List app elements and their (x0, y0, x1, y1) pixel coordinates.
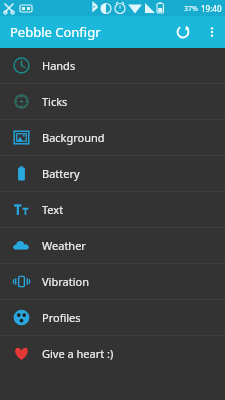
staticText: Hands (42, 58, 76, 73)
button[interactable]: Profiles (0, 300, 225, 335)
staticText: Text (42, 202, 64, 217)
button[interactable]: Weather (0, 228, 225, 263)
button[interactable]: Give a heart :) (0, 336, 225, 371)
button[interactable]: More options (199, 19, 225, 45)
button[interactable]: Ticks (0, 84, 225, 119)
staticText: Background (42, 130, 105, 145)
button[interactable]: Text (0, 192, 225, 227)
staticText: 37% (184, 4, 198, 14)
staticText: Weather (42, 238, 86, 253)
staticText: Ticks (42, 94, 68, 109)
button[interactable]: Vibration (0, 264, 225, 299)
staticText: Vibration (42, 274, 89, 289)
staticText: Give a heart :) (42, 346, 114, 361)
button[interactable]: Background (0, 120, 225, 155)
button[interactable]: Hands (0, 48, 225, 83)
staticText: Battery (42, 166, 80, 181)
button[interactable]: Battery (0, 156, 225, 191)
staticText: Pebble Configr (10, 23, 101, 41)
staticText: Profiles (42, 310, 81, 325)
staticText: 19:40 (201, 3, 222, 14)
button[interactable]: Refresh (167, 16, 199, 48)
